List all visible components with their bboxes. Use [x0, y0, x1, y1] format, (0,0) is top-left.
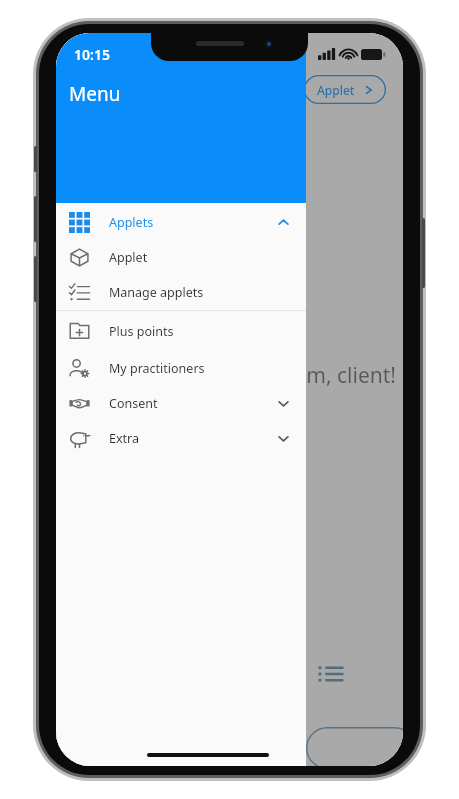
button[interactable]: Manage applets: [56, 275, 306, 310]
button[interactable]: Applets: [56, 205, 306, 240]
staticText: Plus points: [109, 323, 174, 340]
button[interactable]: Plus points: [56, 311, 306, 351]
staticText: Applet: [109, 249, 148, 266]
staticText: My practitioners: [109, 360, 205, 377]
button[interactable]: Applet: [302, 73, 384, 101]
button[interactable]: Applet: [304, 75, 386, 104]
staticText: Applets: [109, 214, 154, 231]
button[interactable]: Extra: [56, 421, 306, 456]
staticText: Consent: [109, 395, 158, 412]
button[interactable]: Applet: [56, 240, 306, 275]
button[interactable]: My practitioners: [56, 351, 306, 386]
button[interactable]: Consent: [56, 386, 306, 421]
staticText: Manage applets: [109, 284, 204, 301]
staticText: 10:15: [74, 45, 110, 64]
staticText: Menu: [69, 81, 121, 107]
staticText: Extra: [109, 430, 140, 447]
staticText: Applet: [317, 82, 355, 98]
staticText: Welkom, client!: [246, 361, 396, 390]
